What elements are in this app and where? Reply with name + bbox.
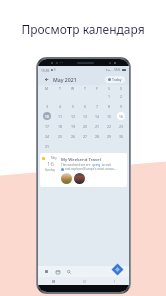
button[interactable]: 18 [56,122,64,130]
button[interactable]: 23 [117,122,125,130]
staticText: 15:55 [41,68,50,72]
button[interactable]: May [40,153,127,187]
staticText: 22 [107,124,112,129]
staticText: 16 [47,160,54,168]
staticText: May [51,156,57,160]
staticText: 2 [120,94,123,99]
staticText: 28 [95,134,100,139]
staticText: 5 [54,68,56,72]
button[interactable]: 20 [81,122,89,130]
staticText: 29 [107,134,112,139]
button[interactable]: 7 [93,102,101,110]
button[interactable]: 3 [43,102,51,110]
staticText: 7 [96,104,99,109]
staticText: 5 [72,104,75,109]
button[interactable]: Календарь [54,268,61,275]
staticText: T [84,86,86,91]
staticText: 30 [119,134,124,139]
staticText: 8 [108,104,111,109]
staticText: 11 [58,114,63,119]
staticText: 14 [95,114,100,119]
button[interactable]: 12 [69,112,77,120]
staticText: S [108,86,110,91]
button[interactable]: 1 [105,92,113,100]
staticText: Today [112,77,122,82]
button[interactable]: 26 [69,132,77,140]
staticText: 21 [95,124,100,129]
staticText: T [59,86,61,91]
button[interactable]: 6 [81,102,89,110]
button[interactable]: 29 [105,132,113,140]
staticText: Просмотр календаря [21,21,145,37]
button[interactable]: Последние приложения [52,280,55,283]
staticText: May 2021 [53,76,77,83]
staticText: and explored Europe's most unusu… [65,167,117,171]
staticText: 10 [45,114,49,118]
button[interactable]: 28 [93,132,101,140]
button[interactable]: Меню [43,268,50,275]
staticText: going [92,163,101,167]
staticText: 1 [108,94,111,99]
staticText: 26 [71,134,76,139]
button[interactable]: 16 [117,112,125,120]
staticText: 15 [107,114,112,119]
staticText: F [96,86,98,91]
button[interactable]: 24 [43,132,51,140]
staticText: ▾ ▴ ⋯ 56% [106,68,121,72]
button[interactable]: 22 [105,122,113,130]
staticText: Sunday [45,168,56,172]
button[interactable]: 10 [43,112,51,120]
button[interactable]: 30 [117,132,125,140]
button[interactable]: 25 [56,132,64,140]
button[interactable]: 27 [81,132,89,140]
button[interactable]: Домой [83,280,86,283]
staticText: This weekend we are [61,163,92,167]
button[interactable]: 17 [43,122,51,130]
button[interactable]: 13 [81,112,89,120]
staticText: M [45,86,49,91]
staticText: 4 [59,104,62,109]
staticText: 16 [119,114,123,118]
button[interactable]: 31 [43,142,51,150]
staticText: 24 [45,134,50,139]
button[interactable]: Назад [42,75,50,83]
staticText: 18 [58,124,63,129]
button[interactable]: 21 [93,122,101,130]
staticText: 20 [83,124,88,129]
button[interactable]: 4 [56,102,64,110]
staticText: 6 [84,104,87,109]
staticText: 17 [45,124,50,129]
staticText: 3 [46,104,49,109]
button[interactable]: 19 [69,122,77,130]
button[interactable]: 5 [69,102,77,110]
button[interactable]: Создать событие [111,263,124,276]
button[interactable]: 15 [105,112,113,120]
staticText: 25 [58,134,63,139]
button[interactable]: 8 [105,102,113,110]
staticText: My Weekend Travel [61,156,101,162]
button[interactable]: 9 [117,102,125,110]
button[interactable]: 14 [93,112,101,120]
button[interactable]: Today [105,76,125,83]
staticText: to visit [101,163,112,167]
staticText: 27 [83,134,88,139]
button[interactable]: 2 [117,92,125,100]
staticText: 23 [119,124,124,129]
staticText: 9 [120,104,123,109]
staticText: 19 [71,124,76,129]
staticText: W [71,86,75,91]
staticText: 13 [83,114,88,119]
button[interactable]: Поиск [65,268,72,275]
staticText: S [120,86,122,91]
staticText: 12 [71,114,76,119]
button[interactable]: 11 [56,112,64,120]
button[interactable]: Назад [113,280,116,283]
staticText: 31 [45,144,50,149]
